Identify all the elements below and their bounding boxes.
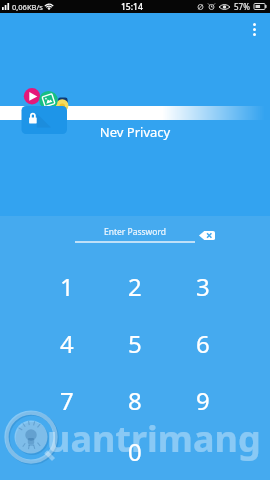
button[interactable]: 2: [101, 258, 169, 315]
button[interactable]: More options: [243, 18, 265, 40]
staticText: uantrimang: [47, 414, 261, 463]
button[interactable]: 8: [101, 372, 169, 429]
staticText: 1: [60, 270, 74, 303]
staticText: 3: [196, 270, 210, 303]
staticText: 15:14: [121, 1, 143, 13]
staticText: 0: [128, 435, 142, 468]
button[interactable]: 1: [33, 258, 101, 315]
button[interactable]: 6: [169, 315, 237, 372]
button[interactable]: 7: [33, 372, 101, 429]
button[interactable]: Backspace: [199, 230, 215, 241]
staticText: 6: [196, 327, 210, 360]
staticText: 7: [60, 384, 74, 417]
staticText: 8: [128, 384, 142, 417]
button[interactable]: 4: [33, 315, 101, 372]
button[interactable]: 5: [101, 315, 169, 372]
staticText: Enter Password: [75, 226, 195, 238]
staticText: Nev Privacy: [0, 123, 270, 141]
staticText: 2: [128, 270, 142, 303]
button[interactable]: 0: [101, 429, 169, 474]
staticText: 5: [128, 327, 142, 360]
button[interactable]: 3: [169, 258, 237, 315]
button[interactable]: 9: [169, 372, 237, 429]
staticText: 0,06KB/s: [12, 2, 43, 12]
staticText: 9: [196, 384, 210, 417]
staticText: 4: [60, 327, 74, 360]
staticText: 57%: [234, 1, 250, 12]
